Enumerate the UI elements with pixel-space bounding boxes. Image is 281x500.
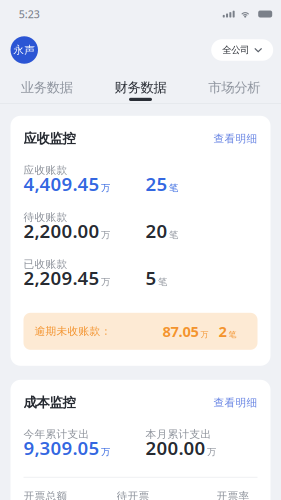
button[interactable]: 业务数据 [0, 72, 94, 103]
staticText: 财务数据 [114, 79, 166, 96]
button[interactable]: 查看明细 [213, 132, 257, 145]
staticText: 开票总额 [23, 490, 67, 500]
button[interactable]: 查看明细 [213, 396, 257, 409]
staticText: 5:23 [19, 7, 40, 21]
staticText: 万 [200, 330, 208, 339]
staticText: 待收账款 [23, 211, 67, 224]
staticText: 笔 [169, 182, 178, 194]
staticText: 待开票 [116, 490, 149, 500]
staticText: 今年累计支出 [23, 428, 89, 441]
staticText: 市场分析 [208, 79, 260, 96]
staticText: 25 [145, 171, 167, 196]
staticText: 成本监控 [23, 394, 75, 411]
staticText: 万 [101, 182, 110, 194]
staticText: 查看明细 [213, 396, 257, 409]
button[interactable]: 市场分析 [187, 72, 281, 103]
staticText: 笔 [158, 276, 167, 288]
staticText: 笔 [169, 229, 178, 241]
staticText: 查看明细 [213, 132, 257, 145]
staticText: 全公司 [222, 44, 249, 56]
staticText: 4,409.45 [23, 171, 99, 196]
staticText: 2,200.00 [23, 218, 99, 243]
staticText: 本月累计支出 [145, 428, 211, 441]
staticText: 9,309.05 [23, 435, 99, 460]
staticText: 万 [207, 446, 216, 458]
staticText: 20 [145, 218, 167, 243]
staticText: 永声 [13, 43, 35, 56]
staticText: 87.05 [162, 322, 198, 341]
staticText: 5 [145, 265, 156, 290]
staticText: 已收账款 [23, 258, 67, 271]
staticText: 万 [101, 229, 110, 241]
staticText: 业务数据 [21, 79, 73, 96]
staticText: 逾期未收账款： [34, 325, 111, 338]
staticText: 2 [218, 322, 226, 341]
staticText: 开票率 [216, 490, 249, 500]
staticText: 万 [101, 276, 110, 288]
button[interactable]: 财务数据 [94, 72, 187, 103]
staticText: 笔 [228, 330, 236, 339]
staticText: 200.00 [145, 435, 205, 460]
button[interactable]: 全公司 [211, 39, 273, 61]
staticText: 2,209.45 [23, 265, 99, 290]
staticText: 应收账款 [23, 164, 67, 177]
staticText: 万 [101, 446, 110, 458]
button[interactable]: 永声 主页 [10, 36, 38, 64]
staticText: 应收监控 [23, 130, 75, 147]
